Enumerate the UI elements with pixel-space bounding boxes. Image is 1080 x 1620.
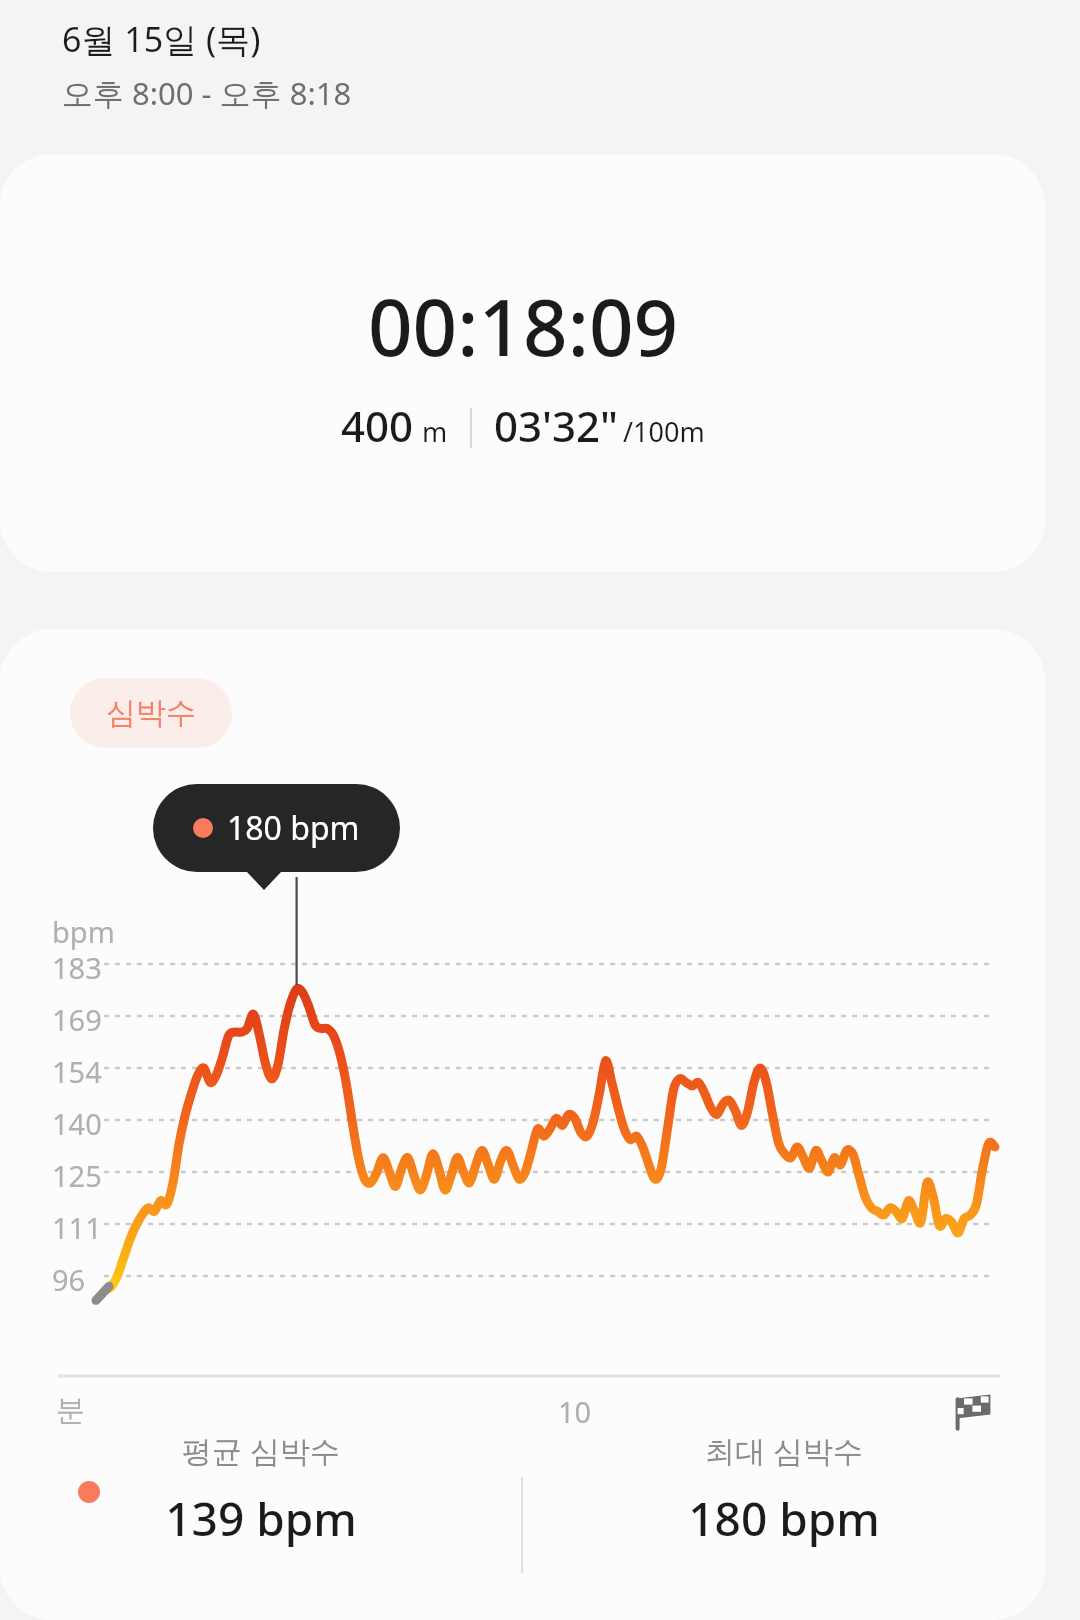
staticText: 최대 심박수	[705, 1430, 863, 1471]
staticText: 6월 15일 (목)	[62, 16, 261, 62]
staticText: 180 bpm	[227, 806, 360, 850]
other: Finish	[952, 1392, 992, 1432]
staticText: 03'32"	[494, 397, 619, 454]
staticText: 오후 8:00 - 오후 8:18	[62, 72, 352, 114]
button[interactable]: 평균 심박수	[0, 1430, 521, 1550]
staticText: 10	[558, 1392, 592, 1431]
staticText: 분	[56, 1392, 85, 1429]
staticText: 140	[52, 1104, 102, 1143]
staticText: 125	[52, 1156, 102, 1195]
staticText: 00:18:09	[368, 273, 679, 379]
staticText: /100m	[623, 413, 705, 450]
staticText: 183	[52, 948, 102, 987]
staticText: 심박수	[106, 694, 196, 732]
staticText: 139 bpm	[165, 1487, 357, 1550]
staticText: 400	[341, 397, 414, 454]
staticText: 평균 심박수	[182, 1430, 340, 1471]
button[interactable]: 00:18:09	[0, 154, 1045, 572]
staticText: bpm	[52, 912, 115, 951]
staticText: m	[422, 413, 448, 450]
button[interactable]: 최대 심박수	[523, 1430, 1045, 1550]
staticText: 96	[52, 1260, 86, 1299]
button[interactable]: 심박수	[70, 678, 232, 748]
staticText: 154	[52, 1052, 102, 1091]
staticText: 180 bpm	[688, 1487, 880, 1550]
staticText: 111	[52, 1208, 102, 1247]
staticText: 169	[52, 1000, 102, 1039]
